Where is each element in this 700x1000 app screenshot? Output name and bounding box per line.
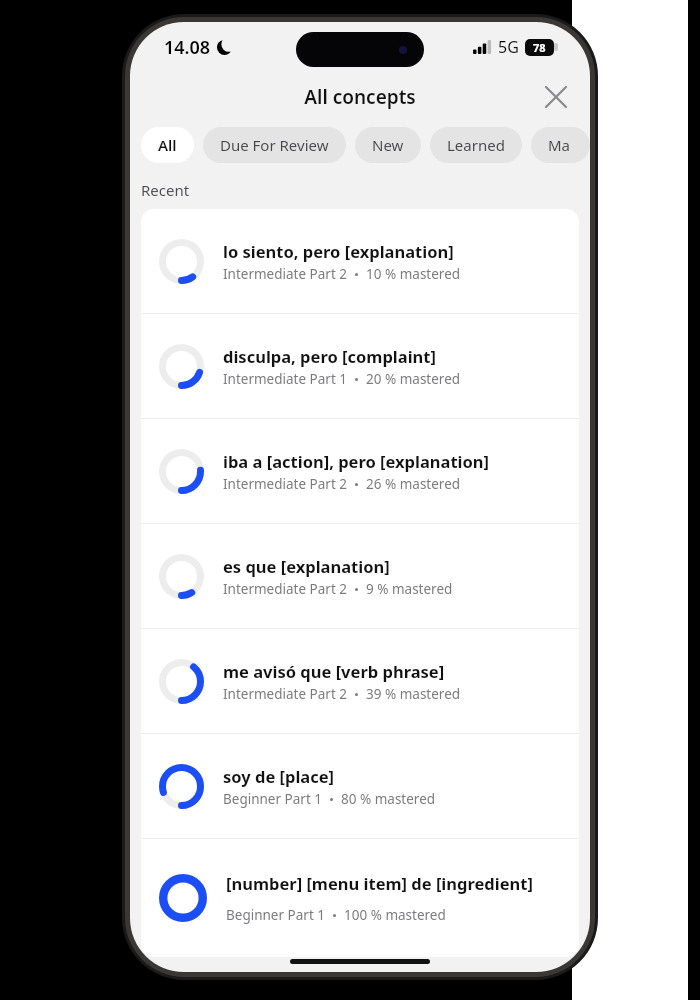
staticText: 14.08 <box>164 35 211 60</box>
staticText: soy de [place] <box>223 765 335 787</box>
staticText: Intermediate Part 2 <box>223 475 347 493</box>
button[interactable]: es que [explanation] <box>141 524 579 628</box>
button[interactable]: [number] [menu item] de [ingredient] <box>141 839 579 957</box>
staticText: Intermediate Part 2 <box>223 265 347 283</box>
staticText: Learned <box>447 135 505 155</box>
button[interactable]: soy de [place] <box>141 734 579 838</box>
staticText: All concepts <box>304 84 416 110</box>
staticText: Mastered <box>548 135 573 155</box>
staticText: All <box>158 135 177 155</box>
button[interactable]: Close <box>536 77 576 117</box>
staticText: [number] [menu item] de [ingredient] <box>226 872 533 894</box>
staticText: New <box>372 135 404 155</box>
staticText: 26 % mastered <box>366 475 461 493</box>
staticText: disculpa, pero [complaint] <box>223 345 436 367</box>
staticText: es que [explanation] <box>223 555 390 577</box>
staticText: Intermediate Part 2 <box>223 580 347 598</box>
staticText: 100 % mastered <box>344 906 446 924</box>
staticText: 20 % mastered <box>366 370 461 388</box>
staticText: 5G <box>498 36 519 58</box>
staticText: iba a [action], pero [explanation] <box>223 450 490 472</box>
staticText: Beginner Part 1 <box>223 790 322 808</box>
button[interactable]: Due For Review <box>203 127 346 163</box>
button[interactable]: iba a [action], pero [explanation] <box>141 419 579 523</box>
button[interactable]: disculpa, pero [complaint] <box>141 314 579 418</box>
staticText: 39 % mastered <box>366 685 461 703</box>
staticText: Intermediate Part 2 <box>223 685 347 703</box>
staticText: me avisó que [verb phrase] <box>223 660 445 682</box>
button[interactable]: Learned <box>430 127 522 163</box>
staticText: Recent <box>141 180 190 200</box>
staticText: 78 <box>533 40 546 55</box>
staticText: Intermediate Part 1 <box>223 370 347 388</box>
button[interactable]: New <box>355 127 421 163</box>
button[interactable]: Mastered <box>531 127 590 163</box>
button[interactable]: me avisó que [verb phrase] <box>141 629 579 733</box>
staticText: Beginner Part 1 <box>226 906 325 924</box>
staticText: 9 % mastered <box>366 580 453 598</box>
staticText: 10 % mastered <box>366 265 461 283</box>
staticText: lo siento, pero [explanation] <box>223 240 454 262</box>
button[interactable]: All <box>141 127 194 163</box>
button[interactable]: lo siento, pero [explanation] <box>141 209 579 313</box>
staticText: Due For Review <box>220 135 329 155</box>
staticText: 80 % mastered <box>341 790 436 808</box>
